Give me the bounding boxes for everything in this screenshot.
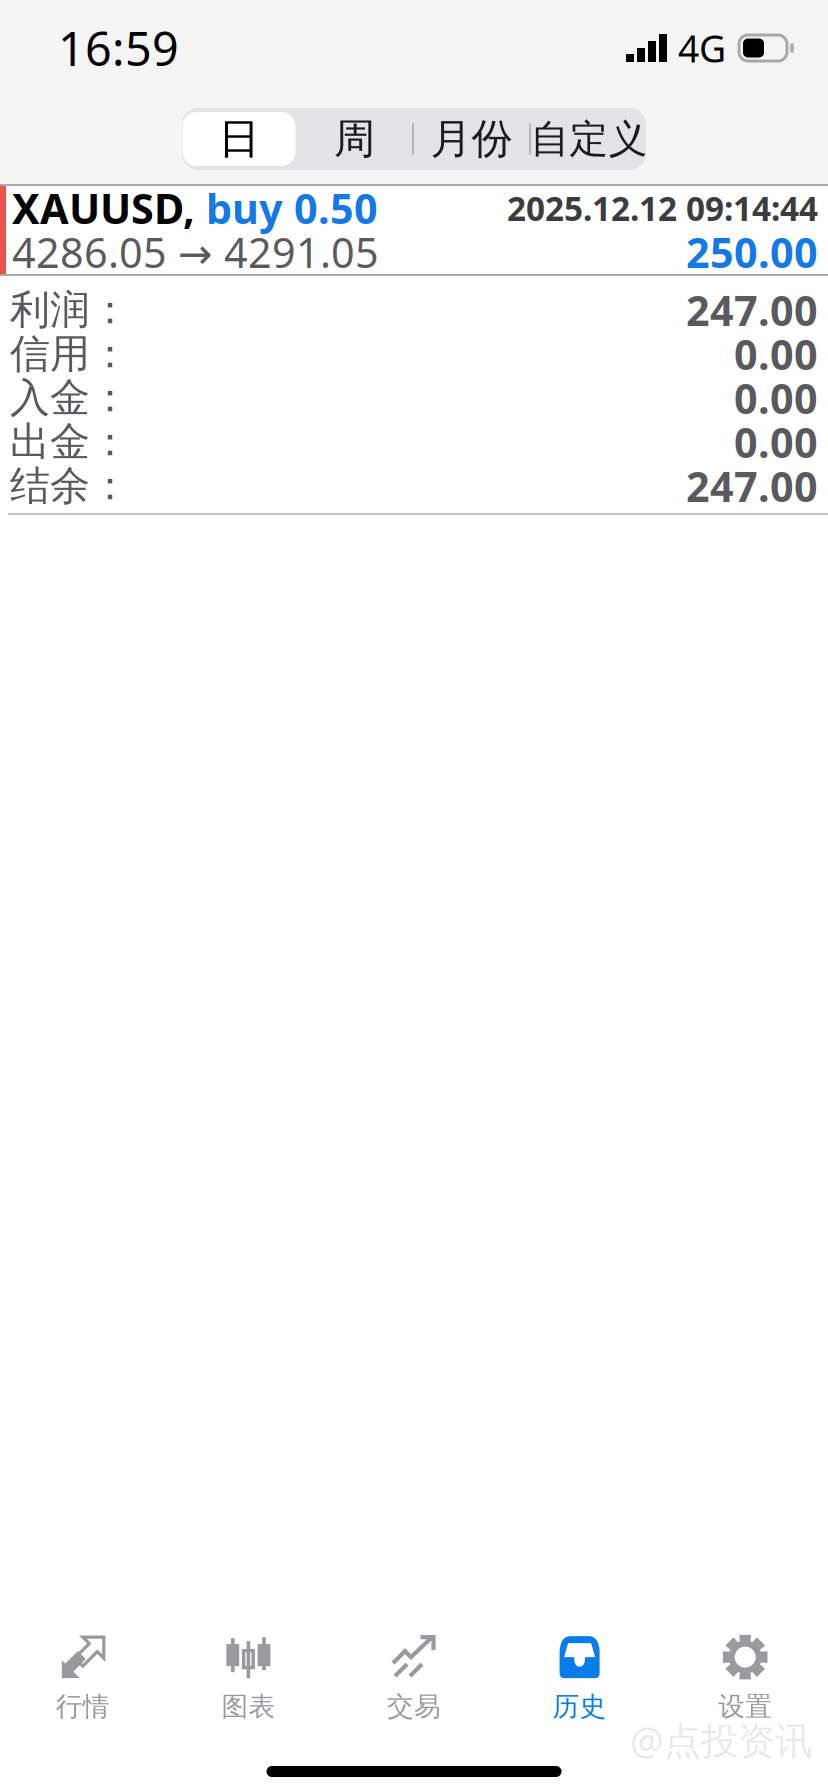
button[interactable]: 行情 bbox=[0, 1622, 166, 1722]
staticText: 0.00 bbox=[734, 371, 818, 425]
staticText: 信用： bbox=[10, 329, 130, 378]
staticText: 247.00 bbox=[686, 283, 818, 337]
button[interactable]: 交易 bbox=[331, 1622, 497, 1722]
staticText: 结余： bbox=[10, 461, 130, 510]
staticText: 月份 bbox=[430, 114, 512, 164]
button[interactable]: 月份 bbox=[414, 108, 529, 170]
staticText: 利润： bbox=[10, 285, 130, 334]
staticText: 日 bbox=[218, 114, 259, 164]
staticText: buy 0.50 bbox=[195, 181, 378, 235]
staticText: 2025.12.12 09:14:44 bbox=[507, 186, 818, 230]
button[interactable]: 图表 bbox=[166, 1622, 331, 1722]
staticText: XAUUSD, bbox=[12, 181, 195, 235]
staticText: 周 bbox=[334, 114, 375, 164]
staticText: 设置 bbox=[718, 1690, 772, 1723]
staticText: @点投资讯 bbox=[630, 1715, 812, 1765]
button[interactable]: 日 bbox=[181, 108, 297, 170]
staticText: 行情 bbox=[56, 1690, 110, 1723]
button[interactable]: 自定义 bbox=[531, 108, 647, 170]
staticText: 0.00 bbox=[734, 327, 818, 381]
staticText: 入金： bbox=[10, 373, 130, 422]
staticText: 247.00 bbox=[686, 459, 818, 513]
staticText: 4286.05 → 4291.05 bbox=[12, 225, 379, 279]
staticText: 4G bbox=[678, 23, 726, 73]
staticText: 交易 bbox=[387, 1690, 441, 1723]
staticText: 16:59 bbox=[58, 17, 179, 79]
staticText: 出金： bbox=[10, 417, 130, 466]
button[interactable]: 历史 bbox=[497, 1622, 662, 1722]
staticText: 历史 bbox=[553, 1690, 607, 1723]
staticText: 图表 bbox=[221, 1690, 275, 1723]
button[interactable]: XAUUSD, bbox=[0, 186, 828, 274]
staticText: 0.00 bbox=[734, 415, 818, 469]
button[interactable]: 设置 bbox=[662, 1622, 828, 1722]
button[interactable]: 周 bbox=[297, 108, 412, 170]
staticText: 250.00 bbox=[686, 225, 818, 279]
staticText: 自定义 bbox=[530, 115, 647, 163]
